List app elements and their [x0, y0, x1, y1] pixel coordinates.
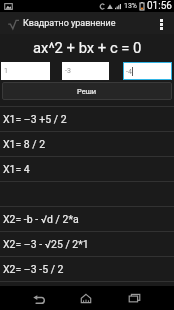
button[interactable]: 1: [1, 62, 50, 80]
staticText: ax^2 + bx + c = 0: [33, 39, 142, 56]
button[interactable]: X2= –3 -5 / 2: [0, 257, 174, 281]
staticText: 1: [4, 67, 8, 75]
staticText: 13%: [124, 2, 137, 10]
staticText: X2= –3 -5 / 2: [3, 263, 64, 275]
staticText: Квадратно уравнение: [23, 18, 116, 29]
staticText: X2= -b - √d / 2*a: [3, 213, 79, 225]
button[interactable]: X1= 4: [0, 157, 174, 181]
staticText: -4: [126, 68, 132, 76]
button[interactable]: X1= –3 +5 / 2: [0, 107, 174, 131]
staticText: X2= –3 - √25 / 2*1: [3, 238, 89, 250]
button[interactable]: Реши: [2, 82, 172, 100]
staticText: X1= 4: [3, 163, 30, 175]
button[interactable]: More options: [152, 12, 174, 34]
button[interactable]: X2= -b - √d / 2*a: [0, 207, 174, 231]
button[interactable]: Recent apps: [111, 286, 158, 310]
button[interactable]: Back: [15, 286, 62, 310]
staticText: 01:56: [147, 0, 172, 12]
staticText: X1= –3 +5 / 2: [3, 113, 67, 125]
button[interactable]: X2= –3 - √25 / 2*1: [0, 232, 174, 256]
button[interactable]: Home: [62, 286, 109, 310]
button[interactable]: -3: [62, 62, 109, 80]
staticText: -3: [65, 67, 71, 75]
staticText: X1= 8 / 2: [3, 138, 46, 150]
button[interactable]: X1= 8 / 2: [0, 132, 174, 156]
button[interactable]: -4: [123, 62, 172, 80]
staticText: Реши: [77, 87, 97, 96]
